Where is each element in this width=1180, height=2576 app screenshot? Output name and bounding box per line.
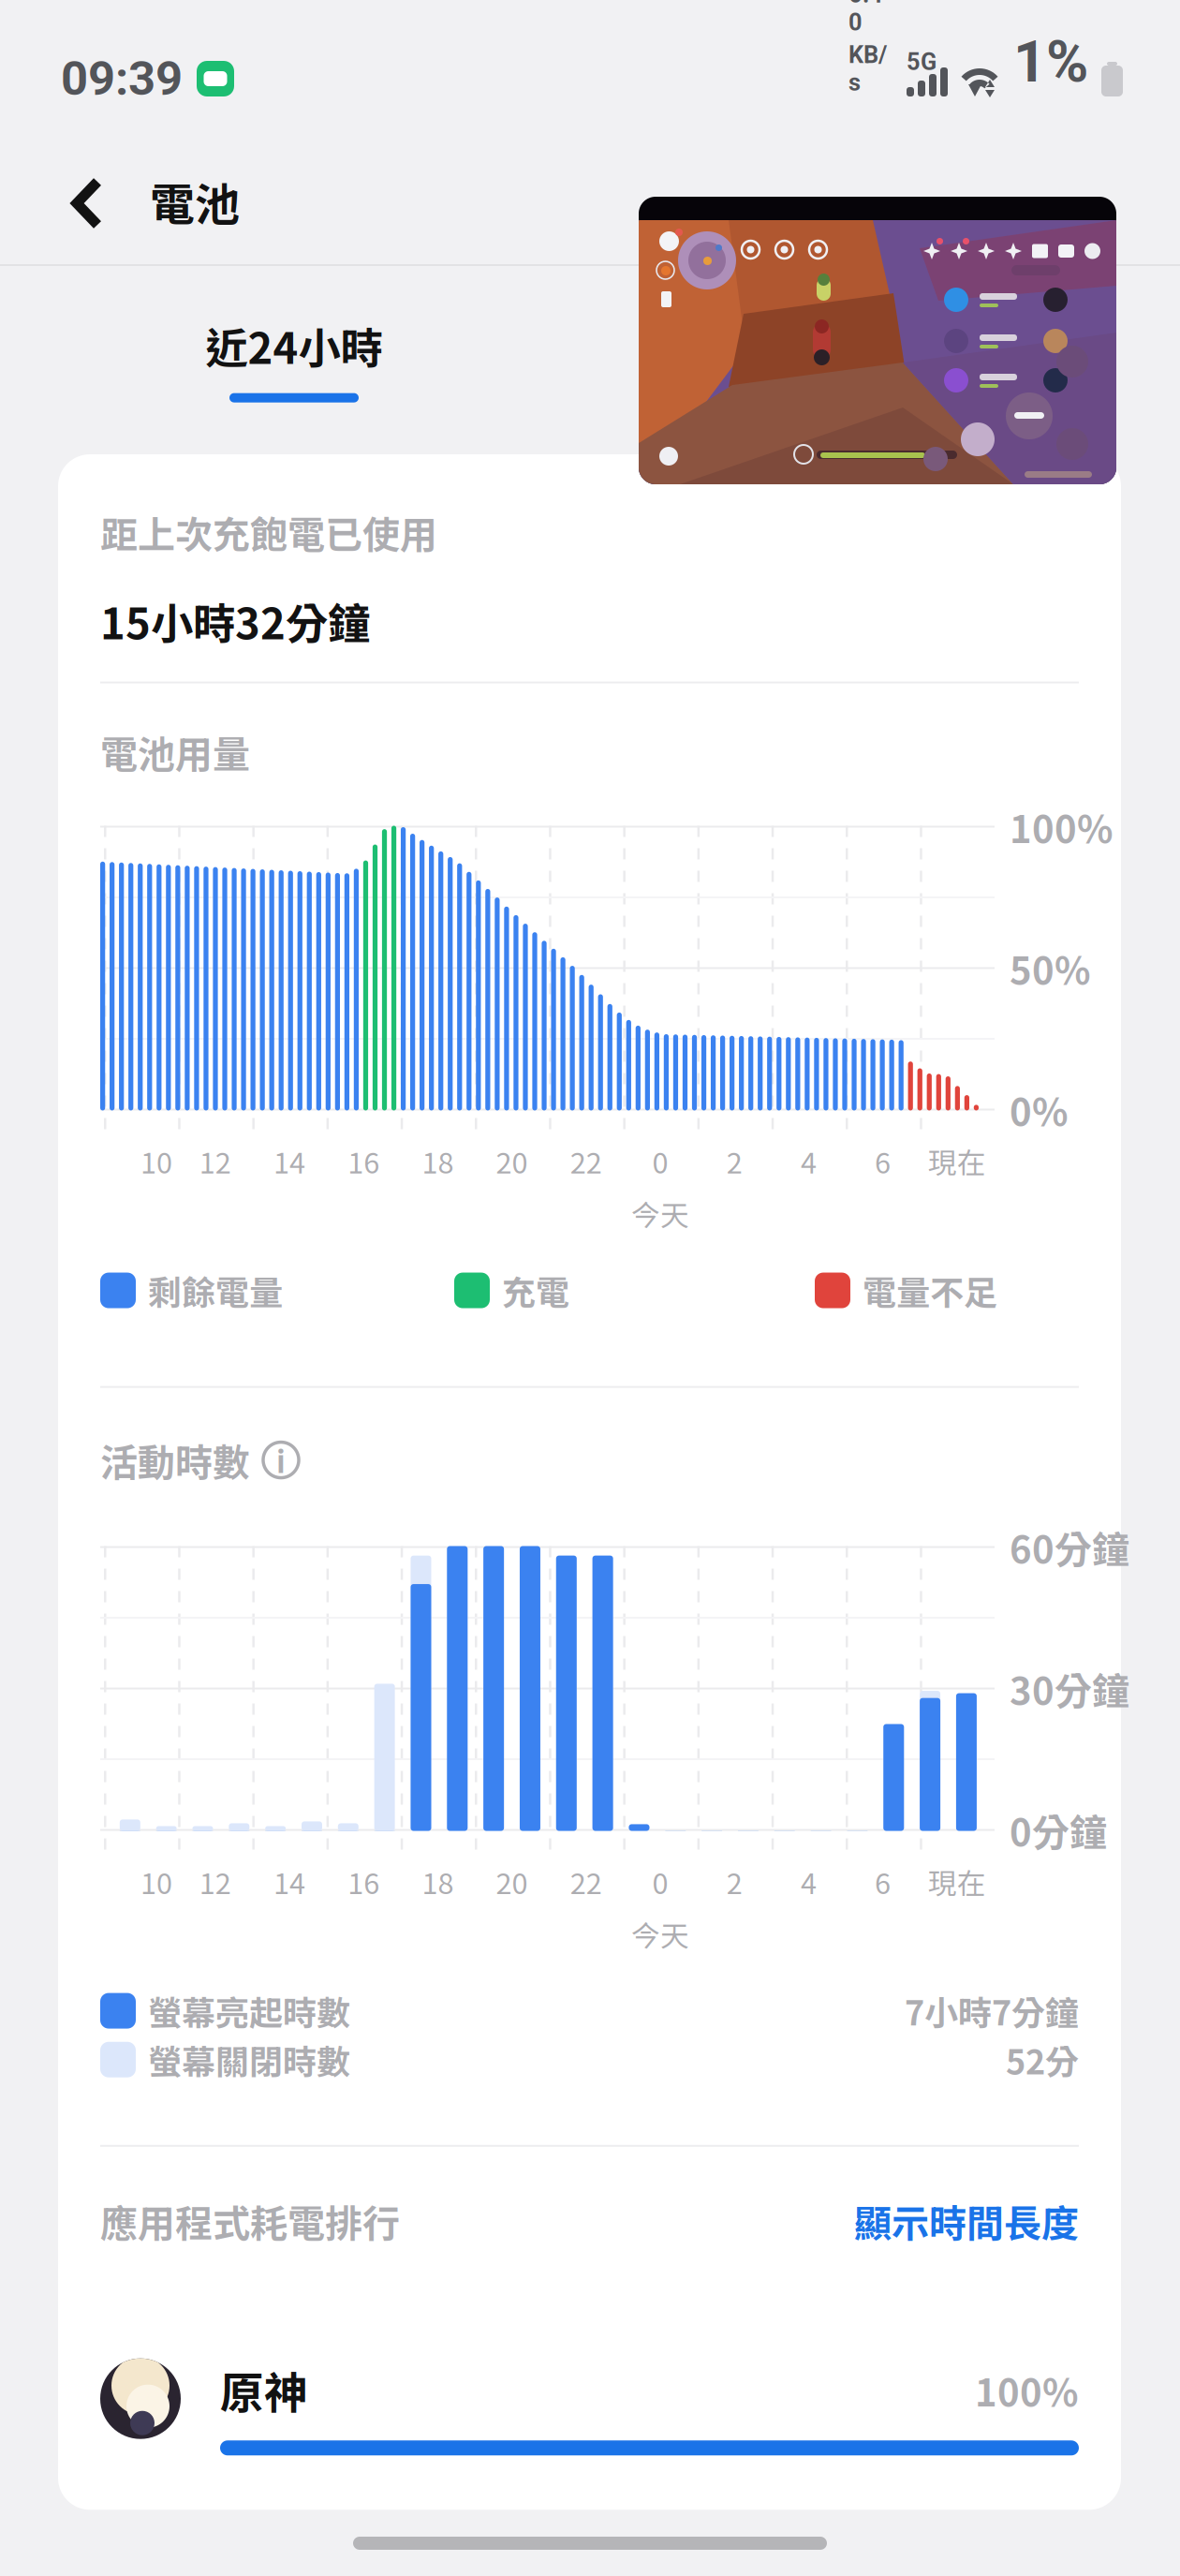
staticText: 現在 [928, 1140, 986, 1182]
staticText: 現在 [928, 1861, 986, 1902]
staticText: 22 [570, 1861, 602, 1902]
button[interactable]: 說明 [263, 1442, 299, 1478]
staticText: 活動時數 [100, 1433, 250, 1487]
staticText: 12 [199, 1140, 231, 1182]
staticText: 09:39 [61, 51, 183, 107]
staticText: 應用程式耗電排行 [100, 2194, 400, 2248]
staticText: KB/s [848, 41, 887, 96]
staticText: 剩餘電量 [148, 1266, 283, 1315]
staticText: 14 [273, 1140, 305, 1182]
staticText: 螢幕關閉時數 [148, 2035, 350, 2084]
staticText: 18 [422, 1140, 454, 1182]
staticText: 6 [875, 1861, 891, 1902]
staticText: 0分鐘 [1010, 1803, 1107, 1857]
staticText: 52分 [1006, 2035, 1079, 2084]
staticText: 16 [348, 1861, 379, 1902]
staticText: 今天 [631, 1913, 689, 1955]
staticText: 22 [570, 1140, 602, 1182]
staticText: 50% [1010, 941, 1091, 995]
staticText: 2 [726, 1140, 742, 1182]
staticText: 顯示時間長度 [854, 2194, 1079, 2248]
staticText: 近24小時 [206, 315, 383, 376]
staticText: 12 [199, 1861, 231, 1902]
staticText: 電量不足 [863, 1266, 997, 1315]
staticText: 充電 [502, 1266, 569, 1315]
staticText: 4 [801, 1140, 817, 1182]
staticText: 今天 [631, 1193, 689, 1234]
button[interactable]: 近24小時 [88, 266, 500, 454]
staticText: 15小時32分鐘 [100, 590, 370, 651]
button[interactable]: 返回 [41, 142, 133, 264]
staticText: 7小時7分鐘 [905, 1986, 1079, 2035]
staticText: 4 [801, 1861, 817, 1902]
staticText: 6 [875, 1140, 891, 1182]
button[interactable]: 懸浮視窗 [639, 197, 1116, 484]
staticText: i [276, 1438, 286, 1482]
staticText: 18 [422, 1861, 454, 1902]
staticText: 0 [652, 1861, 668, 1902]
staticText: 100% [975, 2363, 1079, 2417]
staticText: 距上次充飽電已使用 [100, 505, 437, 559]
staticText: 電池 [150, 169, 240, 234]
staticText: 16 [348, 1140, 379, 1182]
staticText: 6.40 [848, 0, 883, 36]
staticText: 5G [907, 48, 937, 76]
staticText: 10 [140, 1861, 172, 1902]
staticText: 1% [1013, 28, 1088, 96]
staticText: 20 [496, 1140, 528, 1182]
staticText: 60分鐘 [1010, 1520, 1129, 1574]
button[interactable]: 原神 [58, 2248, 1079, 2455]
staticText: 100% [1010, 799, 1114, 854]
staticText: 10 [140, 1140, 172, 1182]
staticText: 14 [273, 1861, 305, 1902]
staticText: 原神 [220, 2358, 308, 2422]
button[interactable]: 顯示時間長度 [854, 2194, 1079, 2248]
staticText: 電池用量 [100, 725, 250, 779]
staticText: 0 [652, 1140, 668, 1182]
staticText: 20 [496, 1861, 528, 1902]
staticText: 30分鐘 [1010, 1661, 1129, 1716]
staticText: 0% [1010, 1082, 1069, 1137]
staticText: 2 [726, 1861, 742, 1902]
staticText: 螢幕亮起時數 [148, 1986, 350, 2035]
